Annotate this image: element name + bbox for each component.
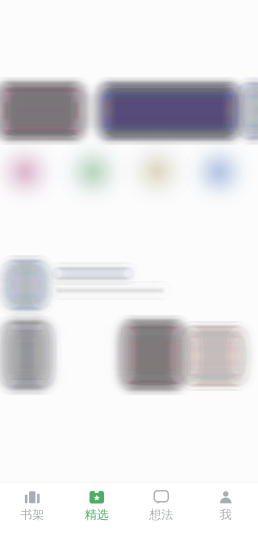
staticText: 想法 bbox=[149, 507, 173, 522]
button[interactable]: 想法 bbox=[129, 483, 193, 546]
button[interactable]: 精选 bbox=[64, 483, 129, 546]
staticText: 精选 bbox=[85, 507, 109, 522]
staticText: 我 bbox=[220, 507, 232, 522]
button[interactable]: 书架 bbox=[0, 483, 64, 546]
staticText: 书架 bbox=[20, 507, 44, 522]
button[interactable]: 我 bbox=[193, 483, 258, 546]
